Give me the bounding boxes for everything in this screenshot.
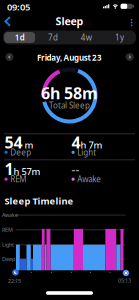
staticText: Awake (77, 174, 101, 184)
staticText: Deep (2, 255, 15, 262)
staticText: Deep (10, 147, 31, 158)
button[interactable]: 1d (3, 30, 36, 44)
staticText: REM (2, 226, 13, 233)
staticText: Light (77, 147, 96, 158)
staticText: REM (10, 174, 26, 184)
staticText: Sleep Timeline (4, 195, 73, 207)
staticText: 4w (81, 32, 92, 43)
staticText: 54 m (4, 132, 33, 153)
button[interactable] (128, 18, 136, 28)
button[interactable] (126, 53, 134, 61)
button[interactable]: 4w (69, 30, 103, 44)
staticText: 7d (48, 32, 58, 43)
staticText: Light (2, 241, 14, 248)
staticText: Awake (2, 211, 18, 219)
staticText: 4h 7m (71, 132, 102, 153)
staticText: 1d (15, 32, 25, 43)
button[interactable]: 1y (103, 30, 136, 44)
button[interactable] (3, 16, 12, 28)
button[interactable] (5, 53, 13, 61)
button[interactable]: 7d (36, 30, 69, 44)
staticText: -- (71, 161, 79, 177)
staticText: 05:13 (118, 277, 131, 284)
staticText: Sleep (55, 14, 83, 28)
staticText: 6h 58m (41, 82, 98, 104)
staticText: Friday, August 23 (37, 52, 102, 63)
staticText: 1y (115, 32, 124, 43)
staticText: 09:05 (7, 1, 30, 13)
staticText: 22:15 (8, 277, 21, 285)
staticText: 1h 57m (4, 158, 40, 179)
staticText: Total Sleep (49, 100, 90, 111)
